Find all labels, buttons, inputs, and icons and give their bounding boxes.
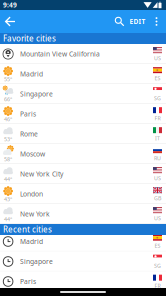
staticText: Moscow [20,150,45,158]
staticText: Singapore [20,90,53,98]
staticText: Paris [20,110,36,118]
staticText: Mountain View California [20,50,100,58]
staticText: US [154,215,161,222]
button[interactable]: 66° [0,84,166,104]
staticText: New York [20,210,50,218]
button[interactable]: 58° [0,144,166,164]
button[interactable]: Search [114,10,125,33]
staticText: EDIT [129,17,145,26]
button[interactable]: Madrid [0,231,166,251]
staticText: US [154,55,161,62]
button[interactable]: Back [1,10,19,33]
staticText: FR [154,115,160,122]
staticText: FR [154,282,160,289]
button[interactable]: EDIT [125,10,150,33]
staticText: SG [154,95,161,102]
staticText: ES [154,242,160,249]
button[interactable]: 43° [0,184,166,204]
staticText: 66° [4,96,12,103]
button[interactable]: Singapore [0,251,166,271]
button[interactable]: 44° [0,164,166,184]
staticText: 55° [4,76,12,83]
staticText: 46° [4,116,12,123]
staticText: 53° [4,136,12,143]
staticText: Recent cities [3,224,52,235]
button[interactable]: 55° [0,64,166,84]
button[interactable]: More options [150,10,163,33]
staticText: London [20,190,43,198]
button[interactable]: Paris [0,271,166,291]
staticText: Favorite cities [3,33,56,44]
staticText: SG [154,262,161,269]
staticText: 58° [4,156,12,163]
staticText: ES [154,75,160,82]
button[interactable]: 46° [0,104,166,124]
staticText: Madrid [20,237,43,246]
staticText: 44° [4,176,12,183]
staticText: New York City [20,170,63,178]
staticText: Paris [20,277,36,286]
button[interactable]: 44° [0,204,166,224]
button[interactable]: 53° [0,124,166,144]
staticText: 44° [4,216,12,223]
staticText: 43° [4,196,12,203]
staticText: US [154,175,161,182]
staticText: RU [154,155,161,162]
staticText: Singapore [20,257,53,266]
staticText: Madrid [20,70,43,78]
staticText: IT [155,135,160,142]
staticText: 9:49 [3,1,17,9]
staticText: GB [154,195,161,202]
staticText: Rome [20,130,38,138]
button[interactable]: Mountain View California [0,44,166,64]
